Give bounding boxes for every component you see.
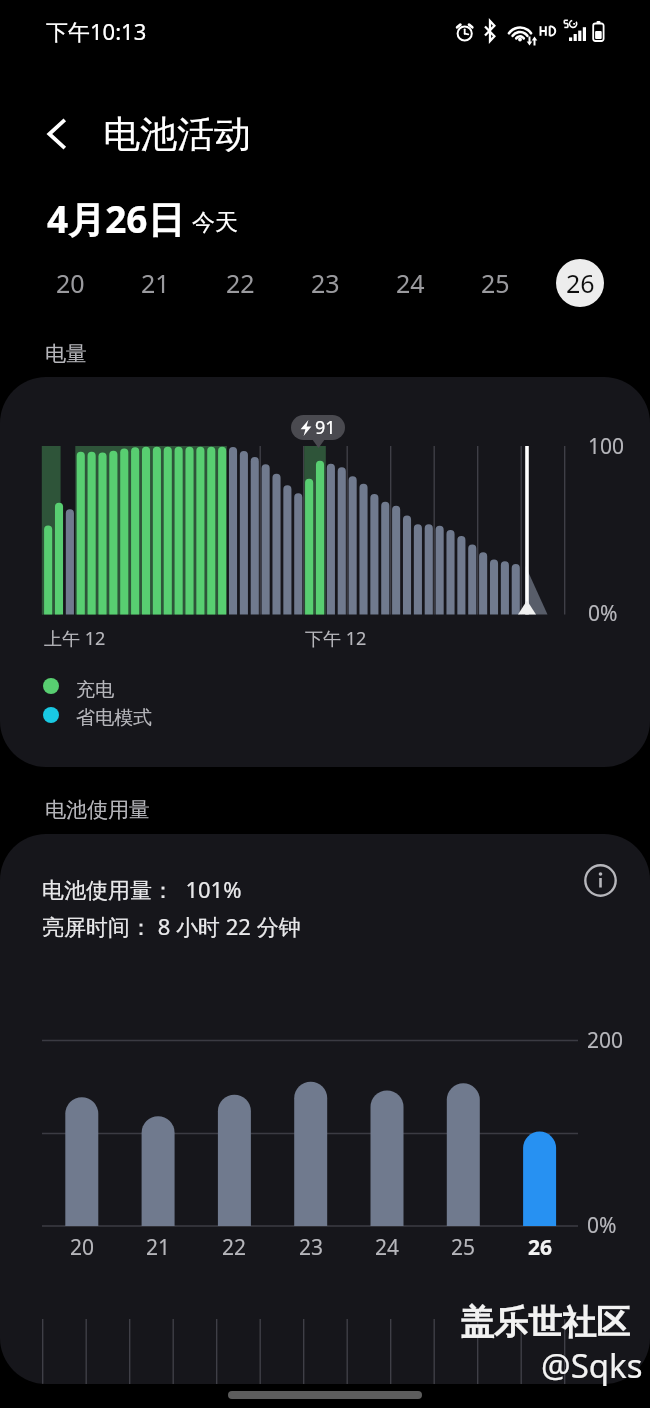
staticText: 91 [315, 415, 336, 440]
staticText: 下午10:13 [46, 16, 147, 46]
staticText: 100 [588, 432, 625, 461]
staticText: @Sqks [541, 1343, 643, 1388]
staticText: 24 [375, 1233, 400, 1262]
staticText: 电池使用量 [45, 797, 150, 823]
button[interactable]: 25 [471, 259, 519, 307]
staticText: 亮屏时间： 8 小时 22 分钟 [42, 911, 301, 941]
staticText: 4月26日 [47, 193, 185, 244]
staticText: 电量 [45, 341, 87, 367]
staticText: 电池活动 [103, 111, 251, 158]
staticText: 25 [451, 1233, 476, 1262]
staticText: 22 [226, 266, 255, 300]
staticText: 21 [141, 266, 170, 300]
staticText: 今天 [192, 208, 238, 237]
button[interactable]: 21 [131, 259, 179, 307]
button[interactable]: Back [30, 107, 84, 161]
staticText: 充电 [76, 678, 114, 702]
button[interactable]: Info [578, 858, 622, 902]
button[interactable]: 23 [301, 259, 349, 307]
staticText: 0% [587, 1211, 617, 1240]
staticText: 23 [311, 266, 340, 300]
staticText: 25 [481, 266, 510, 300]
staticText: 0% [588, 599, 618, 628]
staticText: 26 [528, 1233, 553, 1262]
staticText: 21 [146, 1233, 171, 1262]
staticText: 电池使用量： 101% [42, 874, 242, 904]
staticText: 26 [566, 266, 595, 300]
button[interactable]: 100 [0, 377, 650, 767]
staticText: 上午 12 [44, 626, 106, 651]
button[interactable]: 20 [46, 259, 94, 307]
staticText: 省电模式 [76, 706, 152, 730]
staticText: 盖乐世社区 [460, 1301, 630, 1344]
button[interactable]: 电池使用量： 101% [0, 834, 650, 1384]
staticText: 23 [299, 1233, 324, 1262]
staticText: 22 [222, 1233, 247, 1262]
button[interactable]: 22 [216, 259, 264, 307]
staticText: 下午 12 [305, 626, 367, 651]
staticText: 20 [70, 1233, 95, 1262]
staticText: 200 [587, 1026, 624, 1055]
button[interactable]: 26 [556, 259, 604, 307]
staticText: 20 [56, 266, 85, 300]
staticText: 24 [396, 266, 425, 300]
button[interactable]: 24 [386, 259, 434, 307]
